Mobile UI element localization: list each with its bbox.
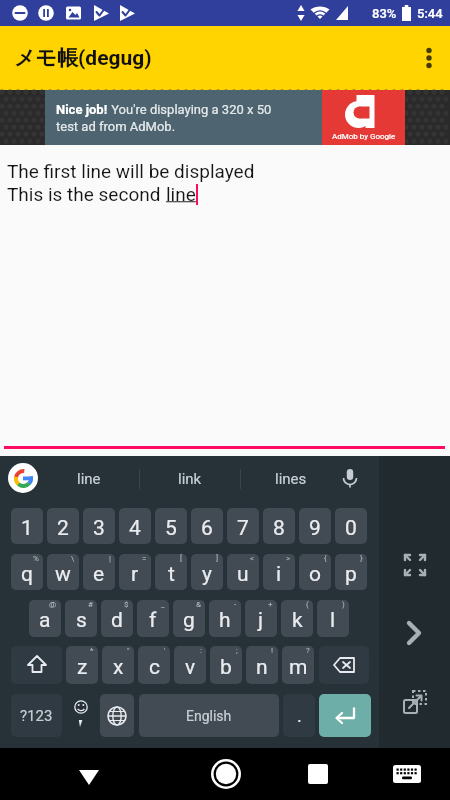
button[interactable]: Next — [395, 613, 435, 653]
button[interactable]: w — [47, 554, 79, 590]
button[interactable]: 4 — [119, 508, 151, 544]
staticText: x — [113, 655, 124, 680]
staticText: \ — [71, 554, 75, 563]
staticText: 5:44 — [417, 6, 443, 21]
button[interactable]: l — [317, 600, 349, 637]
staticText: t — [168, 562, 175, 587]
staticText: Nice job! — [56, 102, 108, 117]
staticText: line — [166, 183, 196, 205]
staticText: v — [185, 655, 196, 680]
staticText: - — [234, 600, 237, 609]
button[interactable]: m — [282, 646, 314, 684]
staticText: 7 — [237, 516, 249, 541]
button[interactable]: 2 — [47, 508, 79, 544]
button[interactable]: g — [173, 600, 205, 637]
button[interactable]: z — [66, 646, 98, 684]
button[interactable]: e — [83, 554, 115, 590]
button[interactable]: 7 — [227, 508, 259, 544]
staticText: m — [289, 655, 308, 680]
button[interactable]: ?123 — [11, 694, 62, 737]
button[interactable]: Shift — [11, 646, 62, 684]
staticText: ! — [271, 646, 274, 655]
staticText: > — [286, 554, 291, 563]
button[interactable]: c — [138, 646, 170, 684]
staticText: % — [33, 554, 39, 563]
staticText: z — [77, 655, 88, 680]
staticText: 0 — [345, 516, 357, 541]
staticText: You're displaying a 320 x 50 — [108, 102, 272, 117]
button[interactable]: Emoji and comma — [66, 694, 96, 737]
button[interactable]: 8 — [263, 508, 295, 544]
button[interactable]: j — [245, 600, 277, 637]
button[interactable]: Switch keyboard — [363, 748, 450, 800]
button[interactable]: f — [137, 600, 169, 637]
staticText: link — [178, 470, 202, 488]
button[interactable]: h — [209, 600, 241, 637]
button[interactable]: 5 — [155, 508, 187, 544]
staticText: } — [360, 554, 363, 563]
staticText: . — [297, 705, 302, 726]
button[interactable]: 3 — [83, 508, 115, 544]
staticText: : — [200, 646, 202, 655]
staticText: $ — [124, 600, 129, 609]
button[interactable]: i — [263, 554, 295, 590]
staticText: AdMob by Google — [332, 132, 396, 141]
button[interactable]: Voice input — [333, 461, 367, 495]
staticText: k — [292, 608, 303, 633]
button[interactable]: 0 — [335, 508, 367, 544]
button[interactable]: p — [335, 554, 367, 590]
staticText: w — [55, 562, 71, 587]
staticText: * — [90, 646, 94, 655]
button[interactable]: r — [119, 554, 151, 590]
button[interactable]: y — [191, 554, 223, 590]
button[interactable]: Back — [0, 748, 178, 800]
button[interactable]: o — [299, 554, 331, 590]
staticText: 3 — [93, 516, 105, 541]
button[interactable]: a — [29, 600, 61, 637]
button[interactable]: lines — [240, 456, 341, 502]
staticText: u — [237, 562, 249, 587]
button[interactable]: . — [283, 694, 315, 737]
staticText: ?123 — [20, 707, 53, 725]
staticText: 6 — [201, 516, 213, 541]
button[interactable]: b — [210, 646, 242, 684]
staticText: i — [276, 562, 282, 587]
button[interactable]: 9 — [299, 508, 331, 544]
staticText: _ — [161, 600, 165, 609]
button[interactable]: v — [174, 646, 206, 684]
button[interactable]: English — [139, 694, 279, 737]
button[interactable]: n — [246, 646, 278, 684]
staticText: h — [219, 608, 231, 633]
button[interactable]: k — [281, 600, 313, 637]
button[interactable]: Resize keyboard — [395, 545, 435, 585]
button[interactable]: Change language — [100, 694, 134, 737]
staticText: n — [256, 655, 268, 680]
button[interactable]: Recent apps — [273, 748, 363, 800]
button[interactable]: Backspace — [319, 646, 369, 684]
button[interactable]: line — [38, 456, 139, 502]
button[interactable]: 6 — [191, 508, 223, 544]
staticText: o — [309, 562, 321, 587]
staticText: ) — [342, 600, 345, 609]
button[interactable]: 1 — [11, 508, 43, 544]
button[interactable]: d — [101, 600, 133, 637]
staticText: e — [93, 562, 105, 587]
staticText: This is the second — [7, 183, 166, 205]
staticText: p — [345, 562, 357, 587]
staticText: ' — [164, 646, 166, 655]
button[interactable]: u — [227, 554, 259, 590]
button[interactable]: s — [65, 600, 97, 637]
button[interactable]: link — [139, 456, 240, 502]
button[interactable]: Enter — [319, 694, 371, 737]
button[interactable]: t — [155, 554, 187, 590]
button[interactable]: x — [102, 646, 134, 684]
staticText: ] — [216, 554, 219, 563]
button[interactable]: More options — [404, 26, 450, 90]
button[interactable]: Pop out keyboard — [395, 682, 435, 722]
staticText: ; — [236, 646, 238, 655]
button[interactable]: q — [11, 554, 43, 590]
button[interactable]: Home — [178, 748, 273, 800]
staticText: b — [220, 655, 232, 680]
button[interactable]: Google — [8, 463, 38, 493]
staticText: test ad from AdMob. — [56, 119, 176, 134]
